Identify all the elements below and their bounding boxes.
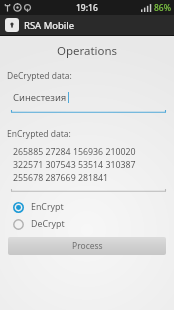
button[interactable]: EnCrypt — [0, 201, 174, 213]
staticText: Operations — [0, 43, 174, 59]
button[interactable]: Синестезия — [0, 91, 174, 104]
staticText: EnCrypted data: — [7, 128, 71, 140]
staticText: 322571 307543 53514 310387 — [13, 159, 136, 171]
staticText: 86% — [154, 2, 171, 14]
staticText: Process — [72, 240, 103, 252]
button[interactable]: Process — [8, 237, 166, 255]
staticText: 255678 287669 281841 — [13, 172, 109, 184]
button[interactable]: 265885 27284 156936 210020 — [0, 146, 174, 184]
staticText: DeCrypted data: — [7, 70, 72, 82]
staticText: RSA Mobile — [24, 19, 75, 32]
staticText: Синестезия — [13, 91, 67, 104]
button[interactable]: DeCrypt — [0, 218, 174, 230]
staticText: 19:16 — [76, 2, 98, 14]
button[interactable]: RSA Mobile — [0, 15, 174, 35]
staticText: EnCrypt — [31, 201, 64, 213]
staticText: DeCrypt — [31, 218, 65, 230]
staticText: 265885 27284 156936 210020 — [13, 146, 136, 158]
